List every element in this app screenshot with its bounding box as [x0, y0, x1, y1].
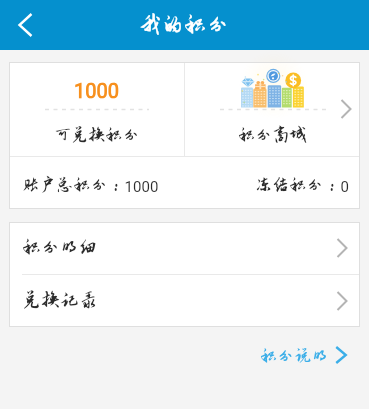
staticText: 积分说明: [260, 346, 329, 365]
staticText: 1000: [74, 79, 119, 102]
staticText: 冻结积分：0: [255, 175, 349, 195]
button[interactable]: 积分明细: [9, 222, 360, 274]
button[interactable]: 兑换记录: [9, 275, 360, 327]
staticText: 积分明细: [22, 237, 98, 258]
staticText: 积分商城: [238, 125, 307, 144]
button[interactable]: Back: [0, 0, 48, 50]
staticText: 账户总积分：1000: [22, 175, 159, 195]
button[interactable]: 1000: [9, 62, 184, 156]
button[interactable]: 积分说明: [246, 337, 369, 373]
staticText: 我的积分: [139, 12, 230, 37]
staticText: 兑换记录: [22, 290, 98, 311]
button[interactable]: 积分商城: [185, 62, 360, 156]
staticText: 可兑换积分: [54, 125, 140, 144]
